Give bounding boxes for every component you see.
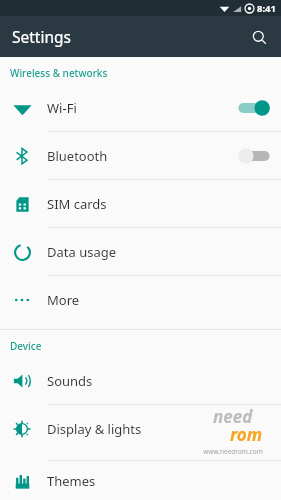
staticText: More	[47, 291, 271, 309]
staticText: Wireless & networks	[10, 66, 108, 80]
staticText: Device	[10, 339, 42, 353]
staticText: Wi-Fi	[47, 99, 237, 117]
staticText: Bluetooth	[47, 147, 237, 165]
staticText: Data usage	[47, 243, 271, 261]
button[interactable]: Toggle off	[237, 145, 271, 167]
button[interactable]: Sounds	[0, 357, 281, 404]
button[interactable]: Toggle on	[237, 97, 271, 119]
staticText: Settings	[12, 26, 71, 47]
staticText: need	[213, 405, 253, 428]
staticText: Sounds	[47, 372, 271, 390]
staticText: www.needrom.com	[203, 447, 263, 456]
button[interactable]: Data usage	[0, 228, 281, 275]
staticText: Display & lights	[47, 420, 271, 438]
button[interactable]: Display & lights	[0, 405, 281, 452]
button[interactable]: Bluetooth	[0, 132, 281, 179]
button[interactable]: More	[0, 276, 281, 323]
button[interactable]: Search	[244, 22, 274, 52]
button[interactable]: Themes	[0, 461, 281, 500]
staticText: 8:41	[257, 2, 276, 15]
staticText: Themes	[47, 472, 271, 490]
button[interactable]: Wi-Fi	[0, 84, 281, 131]
button[interactable]: SIM cards	[0, 180, 281, 227]
staticText: rom	[230, 423, 263, 446]
staticText: SIM cards	[47, 195, 271, 213]
